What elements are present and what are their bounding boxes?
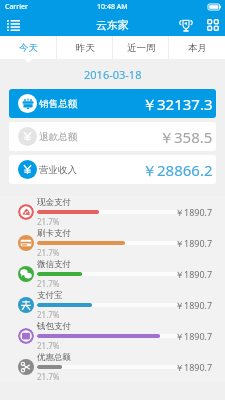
staticText: 10:48 AM <box>97 2 128 12</box>
staticText: ￥1890.7 <box>175 330 213 342</box>
staticText: 近一周 <box>127 42 156 54</box>
staticText: 营业收入 <box>39 164 77 176</box>
staticText: 21.7% <box>37 340 60 351</box>
button[interactable]: 现金支付 <box>0 196 225 227</box>
staticText: 21.7% <box>37 278 60 289</box>
staticText: ￥32137.3 <box>142 94 213 114</box>
button[interactable]: Apps <box>205 17 221 33</box>
staticText: ￥1890.7 <box>175 361 213 373</box>
staticText: 微信支付 <box>37 259 71 270</box>
staticText: 21.7% <box>37 247 60 258</box>
staticText: ￥1890.7 <box>175 299 213 311</box>
staticText: ￥1890.7 <box>175 237 213 249</box>
staticText: 昨天 <box>76 42 95 54</box>
button[interactable]: 销售总额 <box>9 89 216 118</box>
staticText: 支付宝 <box>37 290 63 301</box>
staticText: 现金支付 <box>37 197 71 208</box>
button[interactable]: Menu <box>4 16 22 34</box>
button[interactable]: Awards <box>176 15 196 35</box>
button[interactable]: 近一周 <box>113 36 169 59</box>
staticText: 云东家 <box>96 18 129 32</box>
button[interactable]: 钱包支付 <box>0 320 225 351</box>
button[interactable]: 优惠总额 <box>0 351 225 382</box>
button[interactable]: 昨天 <box>57 36 113 59</box>
staticText: 21.7% <box>37 216 60 227</box>
button[interactable]: 今天 <box>0 36 57 59</box>
staticText: 21.7% <box>37 309 60 320</box>
button[interactable]: 营业收入 <box>9 155 216 184</box>
staticText: 本月 <box>188 42 207 54</box>
staticText: ￥1890.7 <box>175 268 213 280</box>
staticText: Carrier <box>5 2 28 12</box>
staticText: ￥28866.2 <box>142 160 213 180</box>
staticText: 21.7% <box>37 371 60 382</box>
staticText: ￥1890.7 <box>175 206 213 218</box>
button[interactable]: 支付宝 <box>0 289 225 320</box>
staticText: 销售总额 <box>39 98 77 110</box>
staticText: 今天 <box>19 42 38 54</box>
staticText: 钱包支付 <box>37 321 71 332</box>
button[interactable]: 退款总额 <box>9 122 216 151</box>
staticText: ￥358.5 <box>159 127 213 147</box>
staticText: 优惠总额 <box>37 352 71 363</box>
staticText: 2016-03-18 <box>84 67 142 82</box>
button[interactable]: 刷卡支付 <box>0 227 225 258</box>
staticText: 退款总额 <box>39 131 77 143</box>
staticText: 刷卡支付 <box>37 228 71 239</box>
button[interactable]: 微信支付 <box>0 258 225 289</box>
button[interactable]: 本月 <box>169 36 225 59</box>
